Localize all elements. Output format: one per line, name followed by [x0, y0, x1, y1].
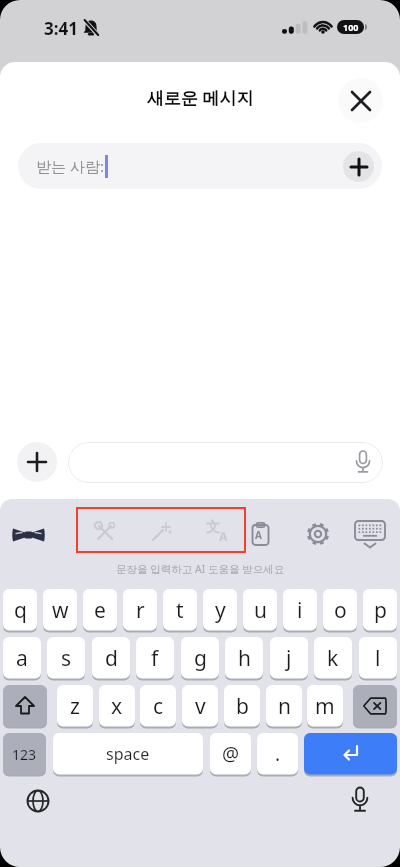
- staticText: 123: [12, 745, 37, 764]
- button[interactable]: o: [323, 589, 357, 631]
- staticText: t: [176, 596, 184, 625]
- button[interactable]: space: [53, 733, 203, 775]
- staticText: b: [236, 692, 249, 721]
- button[interactable]: [3, 685, 47, 727]
- button[interactable]: 123: [3, 733, 46, 775]
- staticText: r: [136, 596, 145, 625]
- staticText: f: [151, 644, 159, 673]
- button[interactable]: a: [3, 637, 41, 679]
- button[interactable]: [68, 442, 383, 483]
- button[interactable]: h: [225, 637, 263, 679]
- button[interactable]: i: [283, 589, 317, 631]
- staticText: q: [14, 596, 27, 625]
- staticText: x: [111, 692, 123, 721]
- button[interactable]: [350, 787, 370, 814]
- button[interactable]: q: [3, 589, 37, 631]
- button[interactable]: t: [163, 589, 197, 631]
- button[interactable]: [354, 521, 386, 549]
- staticText: l: [375, 644, 381, 673]
- button[interactable]: p: [363, 589, 397, 631]
- button[interactable]: n: [266, 685, 302, 727]
- staticText: space: [106, 743, 150, 765]
- staticText: s: [61, 644, 72, 673]
- button[interactable]: [94, 521, 116, 543]
- button[interactable]: v: [182, 685, 218, 727]
- staticText: 새로운 메시지: [147, 86, 254, 109]
- staticText: o: [334, 596, 347, 625]
- button[interactable]: x: [99, 685, 135, 727]
- button[interactable]: s: [47, 637, 85, 679]
- button[interactable]: r: [123, 589, 157, 631]
- button[interactable]: e: [83, 589, 117, 631]
- staticText: 받는 사람:: [36, 156, 108, 176]
- staticText: e: [94, 596, 106, 625]
- staticText: 文: [206, 519, 220, 537]
- button[interactable]: 받는 사람:: [18, 143, 382, 189]
- staticText: 문장을 입력하고 AI 도움을 받으세요: [116, 562, 285, 576]
- button[interactable]: [150, 521, 172, 543]
- staticText: m: [315, 692, 335, 721]
- button[interactable]: [303, 519, 333, 549]
- button[interactable]: @: [210, 733, 251, 775]
- staticText: g: [194, 644, 207, 673]
- staticText: z: [70, 692, 80, 721]
- button[interactable]: m: [307, 685, 343, 727]
- button[interactable]: u: [243, 589, 277, 631]
- button[interactable]: d: [92, 637, 130, 679]
- staticText: y: [215, 596, 226, 625]
- staticText: n: [278, 692, 291, 721]
- staticText: i: [297, 596, 303, 625]
- staticText: A: [255, 528, 262, 542]
- staticText: a: [16, 644, 28, 673]
- button[interactable]: [13, 527, 44, 543]
- staticText: k: [327, 644, 339, 673]
- staticText: 3:41: [44, 17, 78, 40]
- button[interactable]: [353, 685, 397, 727]
- button[interactable]: f: [136, 637, 174, 679]
- button[interactable]: c: [140, 685, 176, 727]
- staticText: u: [254, 596, 267, 625]
- button[interactable]: 文: [206, 519, 232, 545]
- staticText: d: [105, 644, 118, 673]
- staticText: p: [374, 596, 387, 625]
- button[interactable]: [338, 78, 383, 123]
- staticText: c: [153, 692, 164, 721]
- button[interactable]: y: [203, 589, 237, 631]
- button[interactable]: [251, 522, 273, 548]
- button[interactable]: k: [314, 637, 352, 679]
- button[interactable]: .: [257, 733, 298, 775]
- staticText: j: [286, 644, 292, 673]
- staticText: w: [52, 596, 69, 625]
- button[interactable]: b: [224, 685, 260, 727]
- button[interactable]: w: [43, 589, 77, 631]
- button[interactable]: g: [181, 637, 219, 679]
- staticText: @: [222, 741, 240, 767]
- button[interactable]: [17, 442, 57, 482]
- staticText: v: [195, 692, 206, 721]
- staticText: h: [238, 644, 251, 673]
- button[interactable]: [343, 151, 374, 182]
- staticText: .: [275, 741, 281, 767]
- button[interactable]: z: [57, 685, 93, 727]
- button[interactable]: l: [359, 637, 397, 679]
- staticText: A: [219, 528, 228, 544]
- button[interactable]: [26, 789, 50, 813]
- button[interactable]: [304, 733, 397, 775]
- button[interactable]: j: [270, 637, 308, 679]
- staticText: 100: [343, 21, 359, 33]
